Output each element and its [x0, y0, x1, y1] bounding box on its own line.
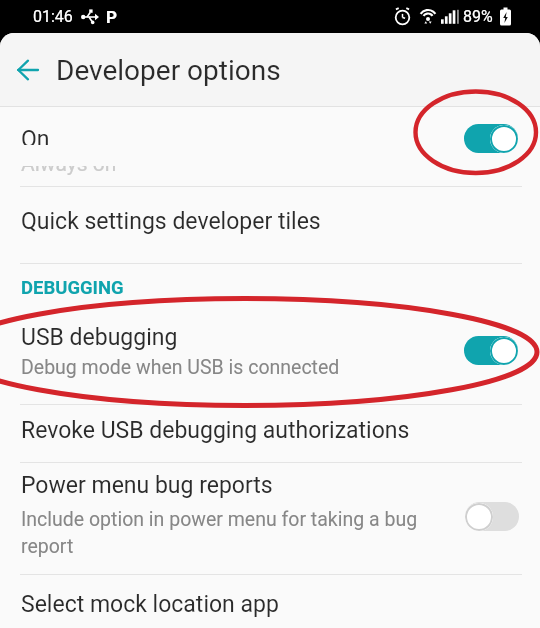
- staticText: On: [21, 126, 50, 153]
- staticText: Include option in power menu for taking …: [21, 508, 446, 558]
- button[interactable]: USB debugging: [0, 311, 540, 392]
- button[interactable]: [464, 124, 518, 153]
- staticText: Debug mode when USB is connected: [21, 356, 340, 379]
- staticText: Quick settings developer tiles: [21, 208, 321, 235]
- staticText: 89%: [463, 7, 493, 26]
- button[interactable]: Revoke USB debugging authorizations: [0, 402, 540, 458]
- staticText: Always on: [21, 152, 117, 177]
- button[interactable]: [465, 502, 519, 531]
- button[interactable]: Select mock location app: [0, 578, 540, 628]
- staticText: Developer options: [56, 54, 281, 87]
- button[interactable]: [0, 33, 56, 107]
- button[interactable]: [0, 463, 540, 574]
- staticText: Select mock location app: [21, 591, 279, 618]
- staticText: Power menu bug reports: [21, 472, 273, 499]
- button[interactable]: On: [0, 107, 540, 171]
- staticText: Revoke USB debugging authorizations: [21, 417, 410, 444]
- button[interactable]: Quick settings developer tiles: [0, 187, 540, 256]
- staticText: 01:46: [33, 7, 73, 26]
- button[interactable]: [464, 336, 518, 365]
- staticText: P: [106, 7, 117, 27]
- staticText: DEBUGGING: [21, 277, 124, 299]
- staticText: USB debugging: [21, 324, 178, 351]
